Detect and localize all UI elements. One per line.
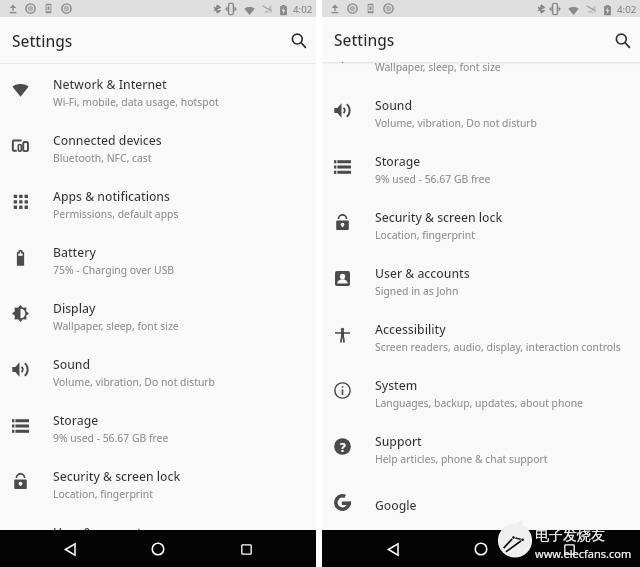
staticText: Settings: [12, 30, 73, 51]
button[interactable]: Storage: [322, 141, 640, 197]
staticText: Settings: [334, 29, 395, 50]
button[interactable]: Sound: [0, 344, 316, 400]
staticText: Sound: [375, 97, 412, 114]
staticText: Security & screen lock: [53, 468, 181, 485]
button[interactable]: Battery: [0, 232, 316, 288]
staticText: 75% - Charging over USB: [53, 263, 175, 277]
button[interactable]: Security & screen lock: [0, 456, 316, 512]
button[interactable]: Network & Internet: [0, 64, 316, 120]
button[interactable]: Search: [284, 26, 312, 54]
staticText: Volume, vibration, Do not disturb: [375, 116, 537, 130]
staticText: Signed in as John: [53, 543, 137, 557]
staticText: Battery: [53, 244, 96, 261]
staticText: 4:02: [293, 3, 313, 16]
staticText: ?: [340, 439, 346, 455]
staticText: Location, fingerprint: [53, 487, 153, 501]
staticText: Google: [375, 497, 417, 514]
button[interactable]: Sound: [322, 85, 640, 141]
staticText: Support: [375, 433, 422, 450]
staticText: Permissions, default apps: [53, 207, 179, 221]
staticText: Network & Internet: [53, 76, 167, 93]
staticText: Signed in as John: [375, 284, 459, 298]
staticText: Help articles, phone & chat support: [375, 452, 548, 466]
button[interactable]: Back: [376, 532, 410, 566]
staticText: 9% used - 56.67 GB free: [375, 172, 491, 186]
button[interactable]: Storage: [0, 400, 316, 456]
button[interactable]: Recents: [229, 532, 263, 566]
button[interactable]: Search: [608, 26, 636, 54]
staticText: Apps & notifications: [53, 188, 170, 205]
button[interactable]: Connected devices: [0, 120, 316, 176]
staticText: System: [375, 377, 418, 394]
button[interactable]: Apps & notifications: [0, 176, 316, 232]
button[interactable]: Display: [0, 288, 316, 344]
staticText: User & accounts: [375, 265, 470, 282]
button[interactable]: Back: [53, 532, 87, 566]
staticText: www.elecfans.com: [535, 546, 632, 561]
staticText: 4:02: [617, 3, 637, 16]
button[interactable]: Home: [464, 532, 498, 566]
staticText: Wallpaper, sleep, font size: [375, 60, 501, 74]
staticText: 9% used - 56.67 GB free: [53, 431, 169, 445]
button[interactable]: Accessibility: [322, 309, 640, 365]
button[interactable]: User & accounts: [322, 253, 640, 309]
staticText: Storage: [53, 412, 99, 429]
staticText: Languages, backup, updates, about phone: [375, 396, 583, 410]
button[interactable]: ?: [322, 421, 640, 477]
staticText: Display: [53, 300, 96, 317]
button[interactable]: Google: [322, 477, 640, 533]
staticText: Storage: [375, 153, 421, 170]
button[interactable]: Recents: [552, 532, 586, 566]
button[interactable]: System: [322, 365, 640, 421]
staticText: Connected devices: [53, 132, 162, 149]
button[interactable]: Display: [322, 29, 640, 85]
staticText: Wallpaper, sleep, font size: [53, 319, 179, 333]
staticText: Volume, vibration, Do not disturb: [53, 375, 215, 389]
staticText: User & accounts: [53, 524, 148, 541]
button[interactable]: Security & screen lock: [322, 197, 640, 253]
staticText: Screen readers, audio, display, interact…: [375, 340, 621, 354]
staticText: Sound: [53, 356, 90, 373]
button[interactable]: User & accounts: [0, 512, 316, 567]
button[interactable]: Home: [141, 532, 175, 566]
staticText: 电子发烧友: [535, 527, 605, 545]
staticText: Bluetooth, NFC, cast: [53, 151, 152, 165]
staticText: Display: [375, 41, 418, 58]
staticText: Security & screen lock: [375, 209, 503, 226]
staticText: Location, fingerprint: [375, 228, 475, 242]
staticText: Accessibility: [375, 321, 446, 338]
staticText: Wi-Fi, mobile, data usage, hotspot: [53, 95, 219, 109]
